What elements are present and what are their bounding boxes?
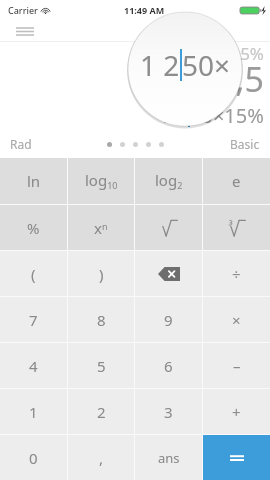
- staticText: ans: [158, 449, 180, 467]
- staticText: (: [31, 264, 36, 284]
- button[interactable]: log10: [68, 158, 134, 204]
- staticText: 1250×15%: [181, 42, 264, 65]
- button[interactable]: Basic: [224, 132, 266, 156]
- button[interactable]: ÷: [203, 251, 270, 296]
- button[interactable]: 2: [68, 389, 134, 434]
- staticText: +: [232, 402, 241, 422]
- staticText: ,: [99, 448, 104, 468]
- staticText: 0: [29, 448, 38, 468]
- button[interactable]: e: [203, 158, 270, 204]
- staticText: Basic: [230, 136, 260, 152]
- button[interactable]: 8: [68, 297, 134, 342]
- staticText: 4: [29, 356, 38, 376]
- staticText: 187,5: [177, 56, 264, 102]
- button[interactable]: +: [203, 389, 270, 434]
- staticText: %: [27, 218, 40, 238]
- button[interactable]: %: [0, 205, 67, 250]
- button[interactable]: 5: [68, 343, 134, 388]
- staticText: log10: [85, 170, 118, 192]
- staticText: –: [233, 356, 241, 376]
- button[interactable]: 7: [0, 297, 67, 342]
- button[interactable]: 1: [0, 389, 67, 434]
- staticText: Carrier: [8, 4, 38, 16]
- staticText: e: [232, 171, 241, 191]
- staticText: 1 2: [159, 102, 188, 129]
- button[interactable]: Cube root: [203, 205, 270, 250]
- staticText: log2: [155, 170, 183, 192]
- button[interactable]: ×: [203, 297, 270, 342]
- staticText: 2: [97, 402, 106, 422]
- staticText: 6: [164, 356, 173, 376]
- button[interactable]: ,: [68, 435, 134, 480]
- staticText: ln: [27, 171, 41, 191]
- button[interactable]: 4: [0, 343, 67, 388]
- button[interactable]: –: [203, 343, 270, 388]
- button[interactable]: Square root: [135, 205, 202, 250]
- button[interactable]: log2: [135, 158, 202, 204]
- button[interactable]: ): [68, 251, 134, 296]
- button[interactable]: Backspace: [135, 251, 202, 296]
- button[interactable]: xn: [68, 205, 134, 250]
- staticText: 3: [164, 402, 173, 422]
- button[interactable]: 6: [135, 343, 202, 388]
- staticText: 8: [97, 310, 106, 330]
- button[interactable]: Menu: [10, 20, 40, 42]
- staticText: 11:49 AM: [124, 4, 165, 16]
- staticText: Rad: [10, 136, 32, 152]
- staticText: 5: [97, 356, 106, 376]
- button[interactable]: 0: [0, 435, 67, 480]
- button[interactable]: 9: [135, 297, 202, 342]
- button[interactable]: ans: [135, 435, 202, 480]
- staticText: ÷: [232, 264, 241, 284]
- button[interactable]: Rad: [4, 132, 38, 156]
- staticText: 50×: [182, 46, 231, 84]
- button[interactable]: ln: [0, 158, 67, 204]
- staticText: 7: [29, 310, 38, 330]
- staticText: 1 2: [140, 46, 180, 84]
- staticText: 9: [164, 310, 173, 330]
- staticText: ×: [232, 310, 241, 330]
- staticText: ): [99, 264, 104, 284]
- button[interactable]: (: [0, 251, 67, 296]
- button[interactable]: [203, 435, 270, 480]
- button[interactable]: 3: [135, 389, 202, 434]
- staticText: 1: [29, 402, 38, 422]
- staticText: 50×15%: [190, 102, 264, 129]
- staticText: xn: [94, 218, 108, 238]
